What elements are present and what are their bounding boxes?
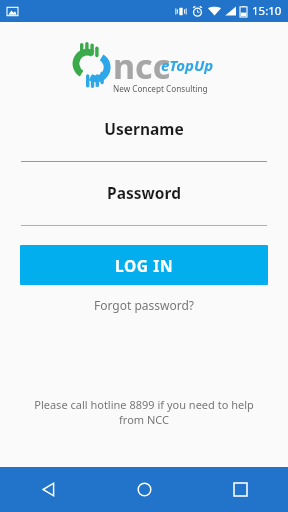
staticText: 15:10	[252, 3, 282, 19]
staticText: Username	[104, 118, 184, 139]
button[interactable]: Back	[0, 467, 96, 512]
button[interactable]: Forgot password?	[86, 294, 203, 316]
staticText: eTopUp	[161, 55, 214, 75]
staticText: Please call hotline 8899 if you need to …	[14, 397, 274, 427]
staticText: LOG IN	[115, 255, 174, 276]
staticText: Forgot password?	[94, 297, 195, 313]
staticText: Password	[107, 182, 181, 203]
button[interactable]: Home	[96, 467, 192, 512]
staticText: New Concept Consulting	[113, 83, 208, 94]
button[interactable]: LOG IN	[20, 245, 268, 285]
button[interactable]: Recent apps	[192, 467, 288, 512]
staticText: ncc	[113, 43, 171, 89]
